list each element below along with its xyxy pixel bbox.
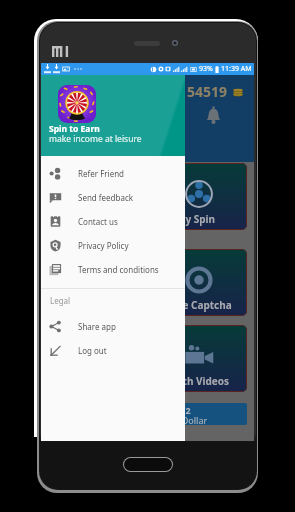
staticText: Solve Captcha — [162, 298, 232, 312]
staticText: Total Dollar — [159, 414, 208, 425]
staticText: Share app — [78, 321, 116, 332]
button[interactable]: Solve Captcha — [154, 249, 247, 316]
button[interactable]: Refer Friend — [41, 161, 185, 185]
button[interactable]: Share app — [41, 314, 185, 338]
staticText: $ 54.52 — [160, 404, 191, 416]
staticText: Log out — [78, 345, 107, 356]
staticText: Privacy Policy — [78, 240, 129, 251]
button[interactable]: Roll Dice — [52, 163, 145, 230]
staticText: Contact us — [78, 216, 118, 227]
button[interactable]: Lucky Spin — [154, 163, 247, 230]
staticText: Legal — [50, 295, 71, 306]
staticText: make income at leisure — [49, 133, 142, 145]
staticText: Roll Dice — [60, 212, 103, 226]
staticText: Send feedback — [78, 192, 134, 203]
staticText: Watch Videos — [162, 374, 230, 388]
staticText: Refer Friend — [78, 168, 125, 179]
staticText: Lucky Spin — [162, 212, 216, 226]
button[interactable]: Log out — [41, 338, 185, 362]
button[interactable]: Play Games — [52, 325, 145, 392]
staticText: Spin to Earn — [49, 123, 100, 135]
staticText: 11:39 AM — [221, 64, 252, 74]
button[interactable]: Privacy Policy — [41, 233, 185, 257]
button[interactable]: Send feedback — [41, 185, 185, 209]
button[interactable]: $ 54.52 — [154, 403, 247, 425]
button[interactable]: Contact us — [41, 209, 185, 233]
staticText: Terms and conditions — [78, 264, 159, 275]
button[interactable]: Watch Videos — [154, 325, 247, 392]
button[interactable]: Terms and conditions — [41, 257, 185, 281]
button[interactable]: Scratch Card — [52, 249, 145, 316]
staticText: 93% — [199, 64, 213, 74]
staticText: 54519 — [187, 82, 228, 101]
staticText: Scratch Card — [60, 298, 123, 312]
